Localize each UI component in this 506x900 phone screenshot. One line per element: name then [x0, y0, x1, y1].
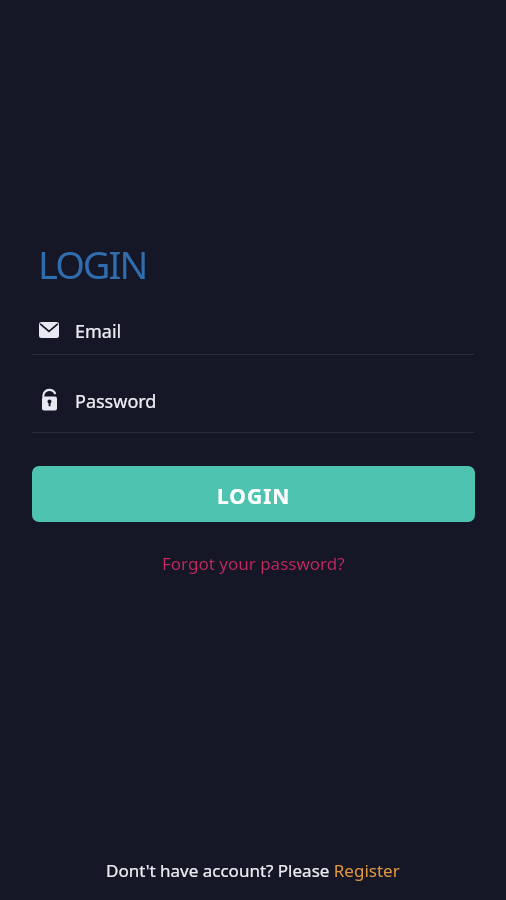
button[interactable] [32, 384, 474, 433]
staticText: Password [75, 389, 157, 414]
button[interactable] [32, 312, 474, 356]
staticText: LOGIN [38, 238, 147, 290]
button[interactable]: LOGIN [32, 466, 475, 522]
button[interactable]: Dont't have account? Please Register [106, 859, 400, 882]
staticText: LOGIN [217, 482, 291, 511]
button[interactable]: Forgot your password? [162, 552, 345, 575]
staticText: Email [75, 319, 122, 344]
